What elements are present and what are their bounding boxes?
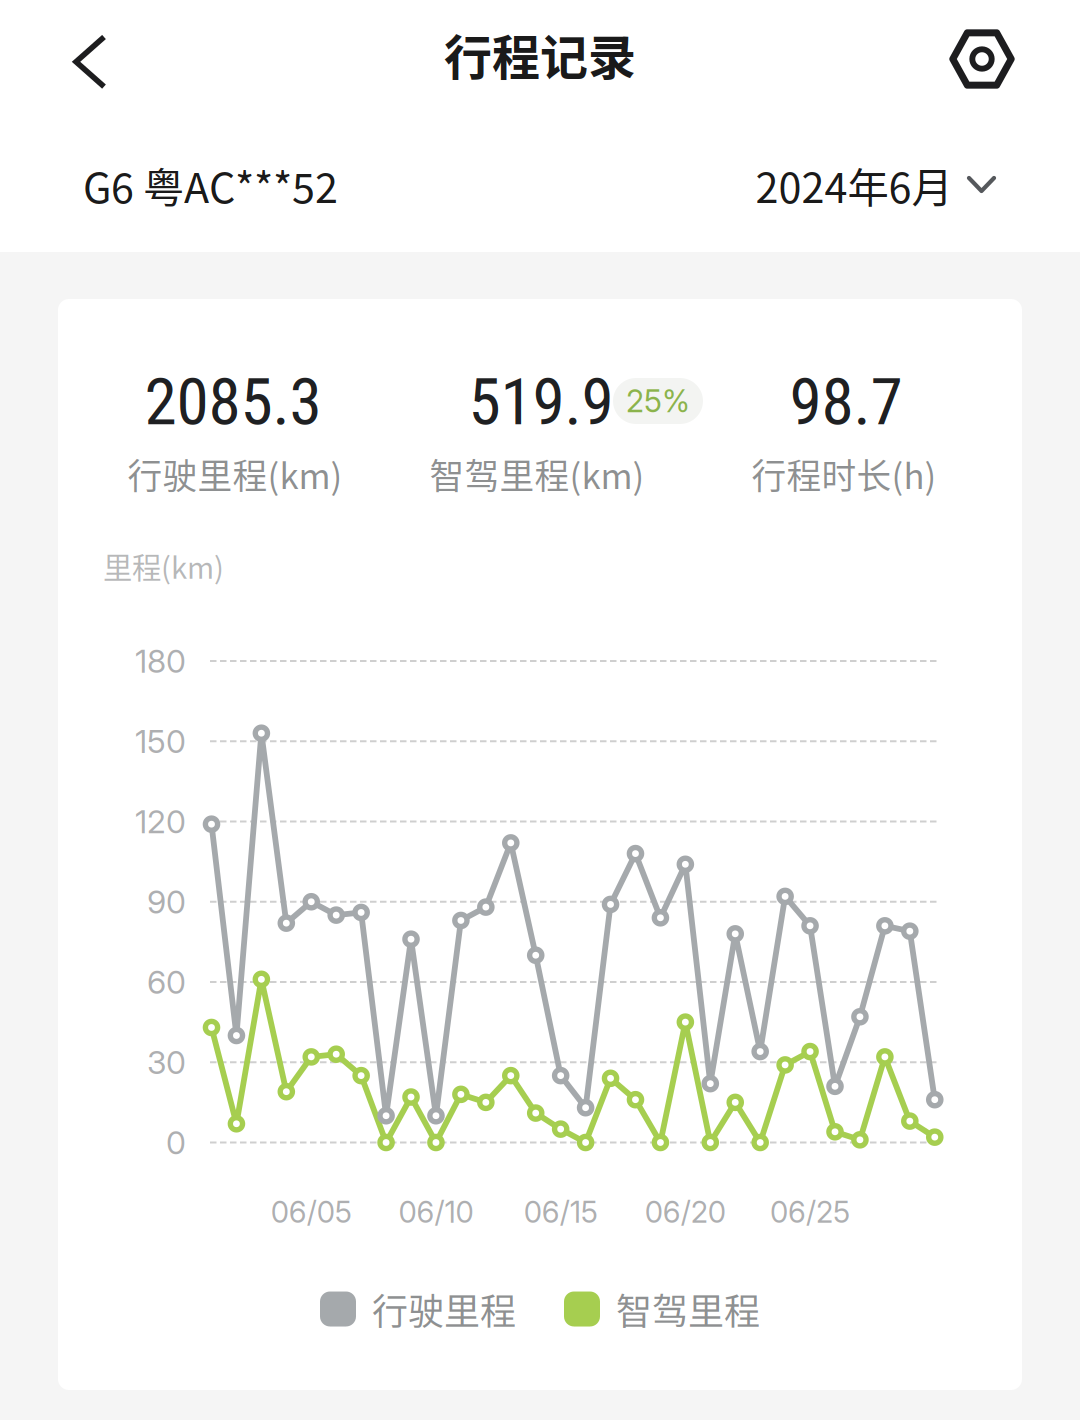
staticText: 智驾里程 <box>616 1283 760 1335</box>
staticText: 98.7 <box>789 364 902 440</box>
button[interactable]: 2024年6月 <box>755 150 996 220</box>
staticText: 06/25 <box>770 1194 850 1230</box>
staticText: 150 <box>135 722 186 761</box>
staticText: 60 <box>147 963 186 1001</box>
staticText: 120 <box>135 802 186 841</box>
staticText: 智驾里程(km) <box>429 449 644 499</box>
staticText: 行程记录 <box>444 19 636 89</box>
staticText: 里程(km) <box>103 545 224 587</box>
staticText: 06/15 <box>524 1194 598 1230</box>
staticText: 行程时长(h) <box>751 449 936 499</box>
staticText: 180 <box>135 642 186 680</box>
button[interactable]: Settings <box>927 1 1037 117</box>
staticText: 06/20 <box>645 1194 726 1230</box>
staticText: 06/05 <box>271 1194 352 1230</box>
staticText: 0 <box>166 1123 186 1162</box>
staticText: 2024年6月 <box>755 155 952 215</box>
staticText: 30 <box>147 1043 186 1082</box>
staticText: 519.9 <box>468 364 613 440</box>
staticText: 06/10 <box>398 1194 473 1230</box>
staticText: 行驶里程 <box>372 1283 516 1335</box>
staticText: G6 粤AC***52 <box>83 155 338 215</box>
staticText: 25% <box>626 382 690 419</box>
button[interactable]: Back <box>35 4 145 120</box>
staticText: 2085.3 <box>144 364 321 440</box>
staticText: 90 <box>147 882 186 921</box>
staticText: 行驶里程(km) <box>127 449 342 499</box>
